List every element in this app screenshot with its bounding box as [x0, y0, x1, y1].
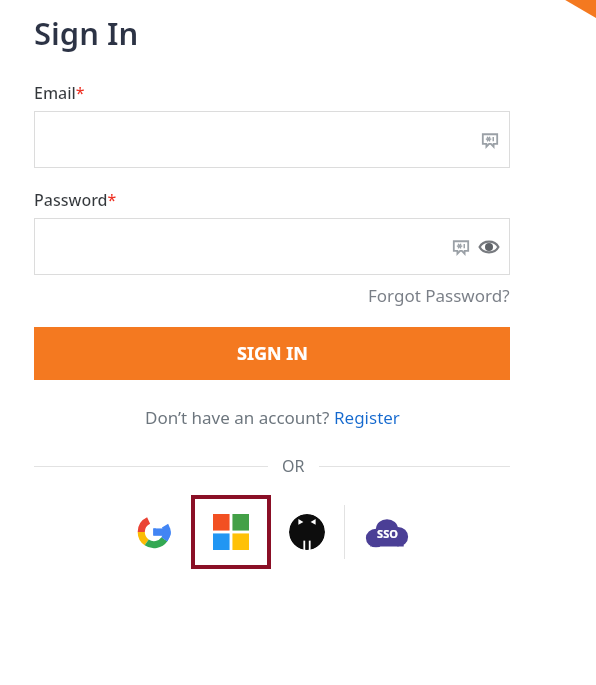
staticText: Forgot Password?	[368, 284, 510, 307]
button[interactable]: Sign in with SSO	[361, 506, 413, 558]
button[interactable]: Show password	[478, 236, 500, 258]
staticText: Email*	[34, 82, 85, 104]
button[interactable]: Sign in with Google	[131, 509, 177, 555]
staticText: SSO	[377, 526, 398, 541]
staticText: Register	[334, 406, 400, 429]
staticText: Don’t have an account?	[145, 406, 334, 429]
button[interactable]: Use saved password	[34, 111, 510, 168]
button[interactable]: Forgot Password?	[368, 284, 510, 307]
button[interactable]: Use saved password	[451, 237, 471, 257]
staticText: SIGN IN	[237, 341, 308, 366]
button[interactable]: Use saved password	[480, 130, 500, 150]
staticText: OR	[282, 455, 305, 477]
staticText: Password*	[34, 189, 117, 211]
button[interactable]: Sign in with Microsoft	[191, 495, 271, 569]
staticText: Sign In	[34, 12, 139, 54]
button[interactable]: Register	[334, 406, 400, 429]
button[interactable]: Sign in with GitHub	[284, 509, 330, 555]
button[interactable]: Use saved password	[34, 218, 510, 275]
button[interactable]: SIGN IN	[34, 327, 510, 380]
